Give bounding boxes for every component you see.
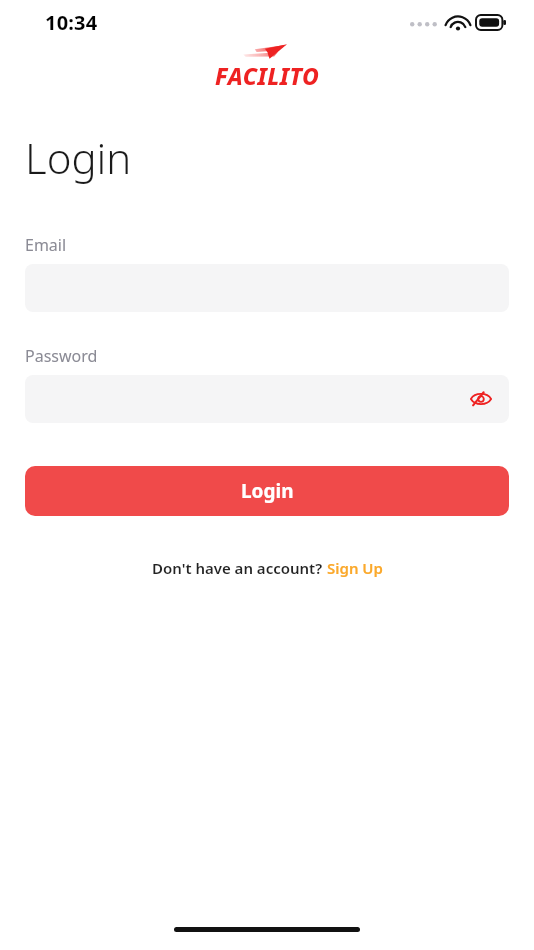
staticText: Don't have an account? (152, 558, 327, 578)
staticText: FACILITO (215, 60, 320, 91)
staticText: Login (241, 478, 294, 504)
button[interactable]: Sign Up (327, 558, 383, 578)
staticText: Password (25, 345, 98, 367)
button[interactable]: Show password (25, 375, 509, 423)
button[interactable]: Login (25, 466, 509, 516)
staticText: Sign Up (327, 558, 383, 578)
staticText: Email (25, 234, 67, 256)
staticText: Login (25, 129, 132, 186)
button[interactable]: Show password (467, 385, 495, 413)
staticText: 10:34 (45, 9, 98, 36)
